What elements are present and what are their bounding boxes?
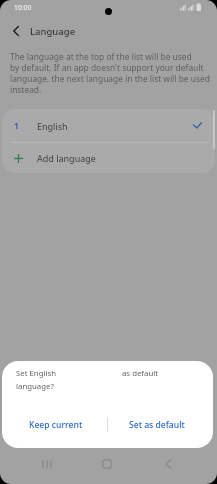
button[interactable]: Add language <box>2 143 215 173</box>
staticText: 1 <box>14 120 19 132</box>
button[interactable] <box>9 24 23 38</box>
staticText: Set as default <box>129 419 185 431</box>
staticText: Set English <box>16 368 57 379</box>
staticText: Add language <box>37 152 96 164</box>
button[interactable]: Keep current <box>4 412 107 438</box>
button[interactable]: 1 <box>2 109 215 142</box>
staticText: The language at the top of the list will… <box>10 51 210 95</box>
button[interactable] <box>35 452 59 476</box>
staticText: 10:00 <box>14 3 32 12</box>
staticText: language? <box>16 381 54 392</box>
button[interactable]: Set as default <box>108 412 205 438</box>
staticText: Language <box>30 25 76 38</box>
button[interactable] <box>95 452 119 476</box>
button[interactable] <box>156 452 180 476</box>
staticText: English <box>37 120 68 132</box>
staticText: as default <box>122 368 159 379</box>
staticText: Keep current <box>29 419 83 431</box>
